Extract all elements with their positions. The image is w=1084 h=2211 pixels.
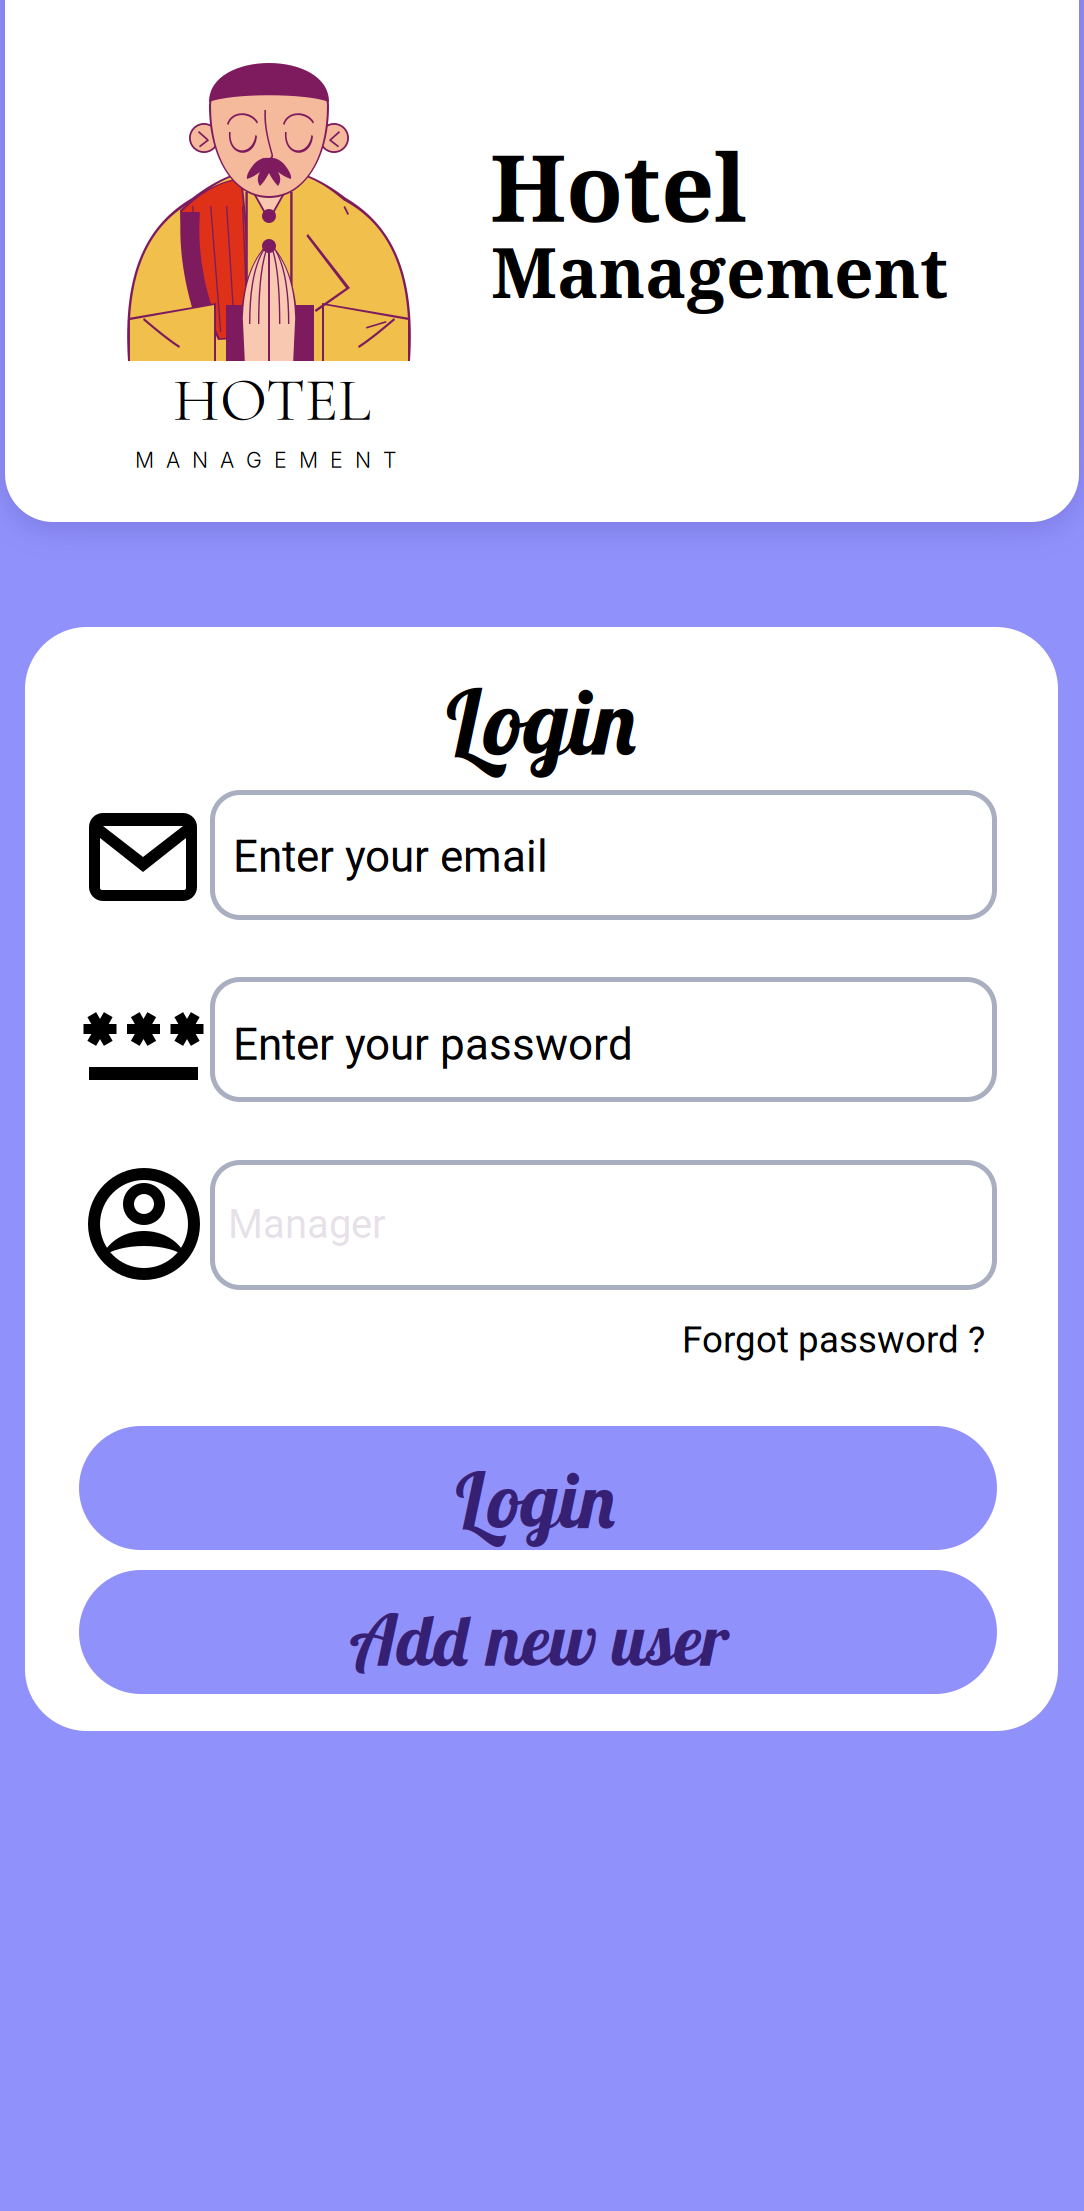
staticText: Login <box>442 664 640 777</box>
staticText: HOTEL <box>173 363 371 437</box>
staticText: Management <box>491 224 948 318</box>
staticText: Add new user <box>353 1595 728 1683</box>
button[interactable]: Login <box>79 1426 997 1550</box>
staticText: Login <box>452 1452 618 1547</box>
button[interactable]: Enter your email <box>210 790 997 920</box>
staticText: Enter your email <box>233 831 548 883</box>
button[interactable]: Manager <box>210 1160 997 1290</box>
button[interactable]: Enter your password <box>210 977 997 1102</box>
staticText: Manager <box>228 1201 386 1248</box>
staticText: M A N A G E M E N T <box>135 447 396 473</box>
button[interactable]: Add new user <box>79 1570 997 1694</box>
staticText: Forgot password ? <box>682 1318 985 1361</box>
staticText: Hotel <box>490 122 747 249</box>
staticText: Enter your password <box>233 1019 633 1071</box>
button[interactable]: Forgot password ? <box>676 1312 988 1368</box>
